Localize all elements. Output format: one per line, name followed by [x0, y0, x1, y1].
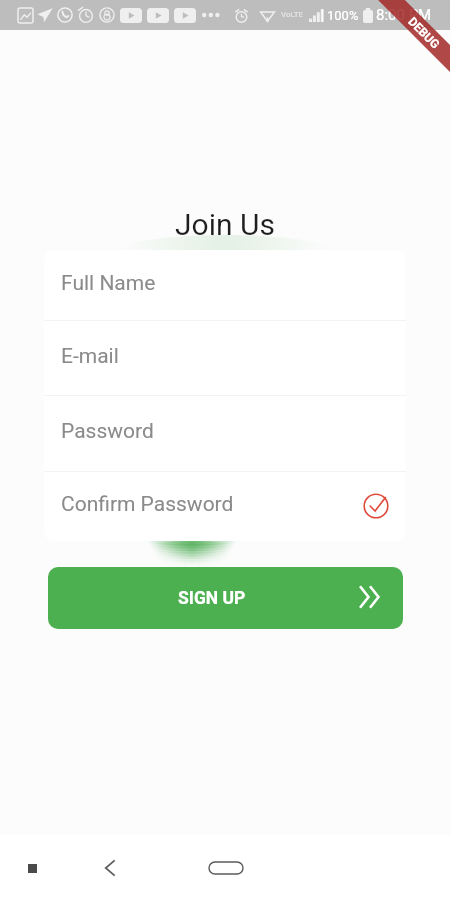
button[interactable]: Password	[61, 396, 387, 471]
button[interactable]: SIGN UP	[48, 567, 403, 629]
staticText: E-mail	[61, 344, 119, 369]
other: Password valid	[363, 493, 389, 519]
button[interactable]: Back	[90, 848, 130, 888]
staticText: Password	[61, 419, 154, 444]
staticText: Full Name	[61, 271, 156, 296]
staticText: SIGN UP	[178, 588, 246, 609]
staticText: 100%	[327, 8, 359, 23]
staticText: Confirm Password	[61, 492, 234, 517]
staticText: 8:00 PM	[376, 6, 432, 24]
staticText: VoLTE	[281, 10, 304, 19]
button[interactable]: Home	[206, 848, 246, 888]
button[interactable]: Recents	[12, 848, 52, 888]
button[interactable]: Confirm Password	[61, 472, 387, 541]
staticText: Join Us	[175, 207, 275, 242]
button[interactable]: Full Name	[61, 250, 387, 320]
button[interactable]: E-mail	[61, 321, 387, 395]
staticText: DEBUG	[405, 14, 443, 52]
